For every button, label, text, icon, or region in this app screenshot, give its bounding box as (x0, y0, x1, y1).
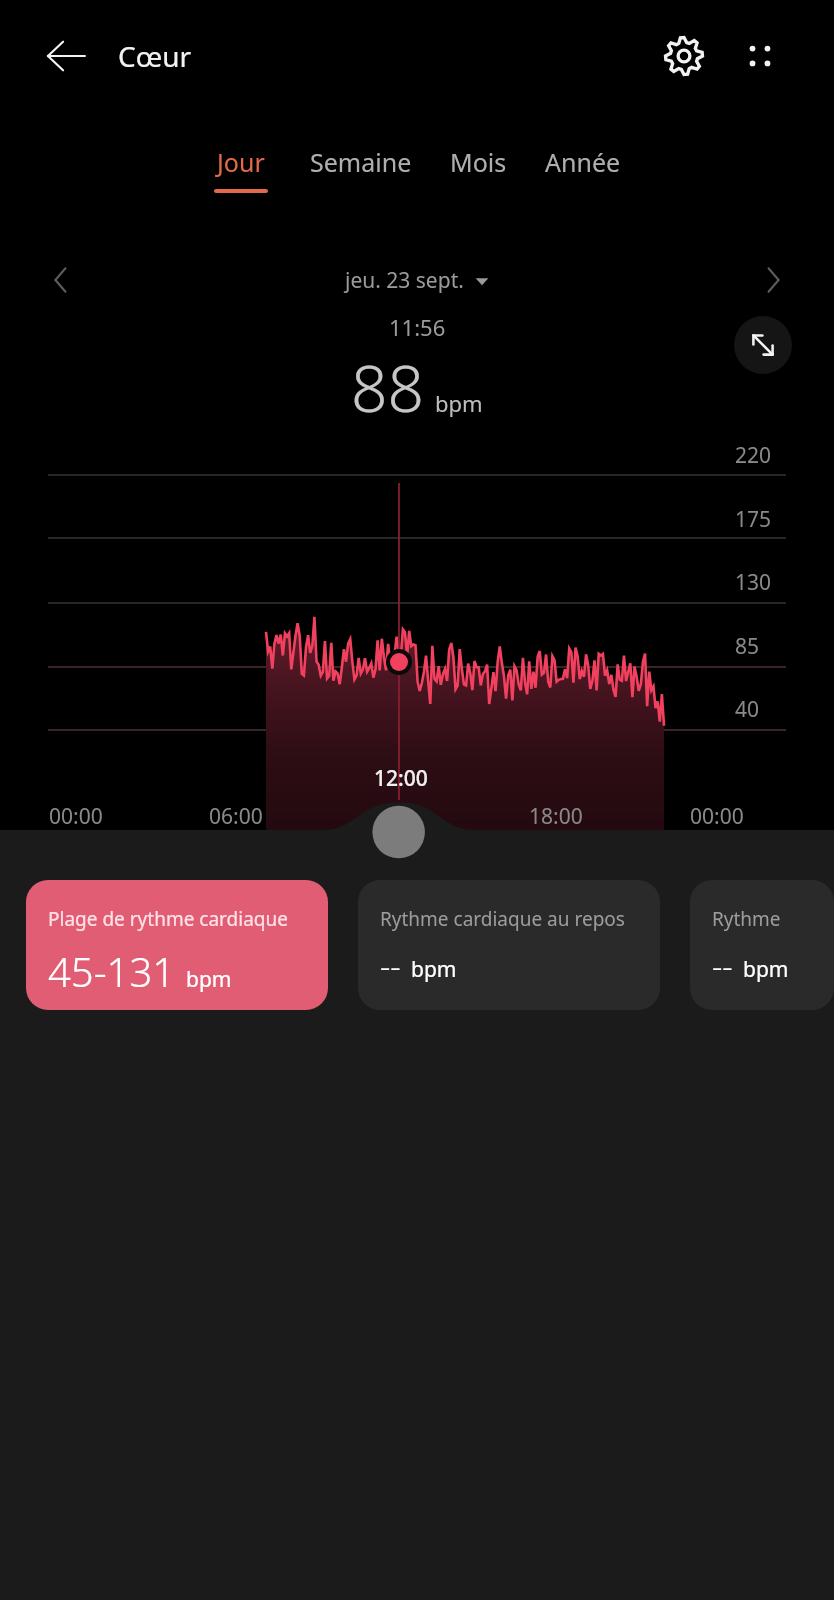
staticText: -- (380, 944, 401, 988)
staticText: 11:56 (389, 312, 446, 342)
button[interactable]: Semaine (307, 142, 415, 196)
button[interactable]: jeu. 23 sept. (339, 260, 495, 301)
staticText: bpm (186, 965, 232, 994)
staticText: 45-131 (48, 944, 176, 998)
button[interactable]: Jour (211, 142, 271, 196)
staticText: bpm (435, 388, 483, 418)
staticText: 175 (735, 505, 772, 534)
staticText: 40 (735, 695, 760, 724)
staticText: Année (545, 145, 621, 179)
button[interactable]: More options (722, 18, 798, 94)
button[interactable]: Rythme cardiaque moyen (690, 880, 834, 1010)
button[interactable]: Année (542, 142, 624, 196)
staticText: 18:00 (529, 802, 583, 831)
staticText: 130 (735, 568, 772, 597)
staticText: bpm (743, 955, 789, 984)
button[interactable]: Back (36, 26, 96, 86)
staticText: 06:00 (209, 802, 263, 831)
button[interactable]: Next day (744, 252, 802, 308)
button[interactable]: Expand chart (734, 316, 792, 374)
button[interactable]: Plage de rythme cardiaque (26, 880, 328, 1010)
button[interactable]: Previous day (32, 252, 90, 308)
staticText: Jour (217, 145, 265, 179)
staticText: Rythme cardiaque au repos (380, 906, 625, 932)
staticText: Cœur (118, 37, 192, 75)
button[interactable]: Settings (646, 18, 722, 94)
staticText: Rythme cardiaque moyen (712, 906, 822, 932)
staticText: Mois (450, 145, 507, 179)
staticText: 85 (735, 632, 760, 661)
staticText: jeu. 23 sept. (345, 266, 464, 295)
staticText: -- (712, 944, 733, 988)
staticText: 88 (351, 344, 425, 431)
staticText: Semaine (310, 145, 412, 179)
button[interactable]: Mois (447, 142, 510, 196)
staticText: 00:00 (49, 802, 103, 831)
staticText: 00:00 (690, 802, 744, 831)
staticText: bpm (411, 955, 457, 984)
staticText: 220 (735, 441, 772, 470)
staticText: Plage de rythme cardiaque (48, 906, 288, 932)
staticText: 12:00 (374, 764, 428, 793)
button[interactable]: Rythme cardiaque au repos (358, 880, 660, 1010)
